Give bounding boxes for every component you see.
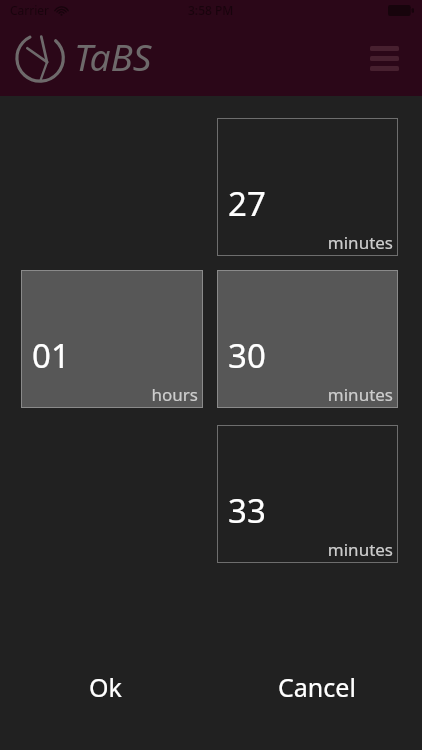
staticText: 30 bbox=[228, 333, 266, 378]
staticText: Cancel bbox=[278, 670, 356, 704]
staticText: minutes bbox=[327, 538, 393, 561]
staticText: 01 bbox=[32, 333, 70, 378]
staticText: 33 bbox=[228, 488, 266, 533]
button[interactable]: 27 bbox=[217, 118, 398, 256]
staticText: minutes bbox=[327, 383, 393, 406]
staticText: hours bbox=[151, 383, 198, 406]
staticText: minutes bbox=[327, 231, 393, 254]
staticText: Ok bbox=[89, 670, 122, 704]
button[interactable]: 30 bbox=[217, 270, 398, 408]
button[interactable]: 33 bbox=[217, 425, 398, 563]
button[interactable]: Ok bbox=[0, 632, 211, 742]
button[interactable]: 01 bbox=[21, 270, 203, 408]
button[interactable]: Menu bbox=[362, 36, 406, 80]
staticText: 3:58 PM bbox=[188, 2, 234, 18]
staticText: Carrier bbox=[10, 2, 50, 18]
staticText: 27 bbox=[228, 181, 266, 226]
button[interactable]: Cancel bbox=[211, 632, 422, 742]
staticText: TaBS bbox=[74, 31, 152, 81]
